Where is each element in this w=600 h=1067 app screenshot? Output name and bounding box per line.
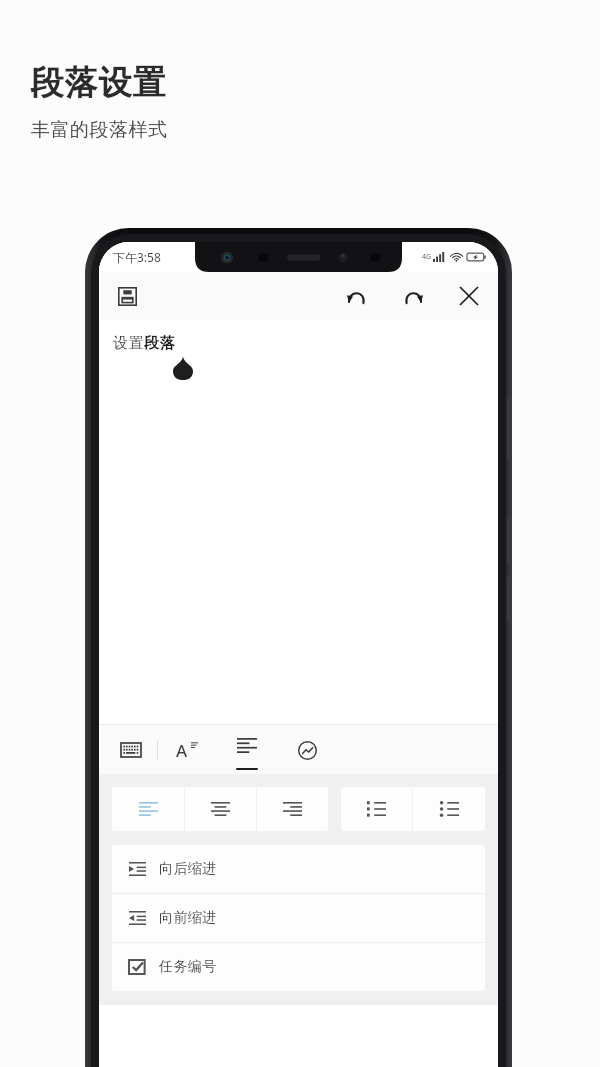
staticText: 4G: [422, 252, 432, 262]
button[interactable]: 向后缩进: [112, 845, 485, 893]
button[interactable]: Paragraph: [224, 725, 270, 774]
button[interactable]: 向前缩进: [112, 894, 485, 942]
staticText: 下午3:58: [113, 249, 161, 265]
staticText: A: [176, 739, 188, 761]
staticText: 任务编号: [159, 958, 217, 976]
staticText: 向前缩进: [159, 909, 217, 927]
staticText: 段落设置: [30, 62, 166, 104]
button[interactable]: Redo: [392, 275, 434, 317]
button[interactable]: 任务编号: [112, 943, 485, 991]
staticText: 设置段落: [113, 334, 175, 353]
staticText: 丰富的段落样式: [31, 118, 168, 142]
button[interactable]: Align right: [257, 787, 328, 831]
button[interactable]: Keyboard: [109, 728, 153, 772]
button[interactable]: Undo: [336, 275, 378, 317]
button[interactable]: Close: [448, 275, 490, 317]
button[interactable]: Save: [109, 278, 145, 314]
button[interactable]: Bulleted list: [413, 787, 485, 831]
button[interactable]: Font: [164, 727, 210, 773]
staticText: 向后缩进: [159, 860, 217, 878]
button[interactable]: Align center: [185, 787, 256, 831]
button[interactable]: Align left: [112, 787, 184, 831]
button[interactable]: Insert image: [284, 727, 330, 773]
button[interactable]: Numbered list: [341, 787, 412, 831]
